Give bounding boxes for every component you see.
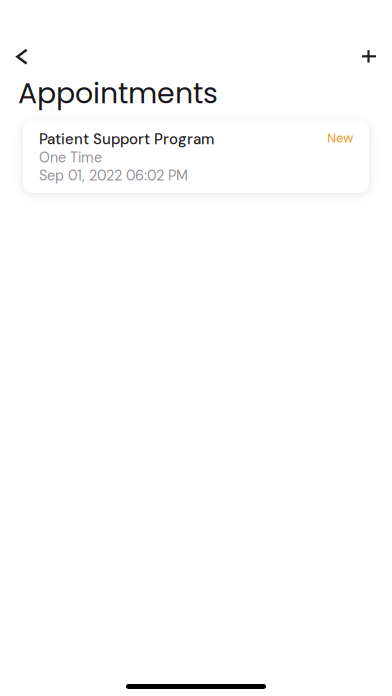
staticText: One Time — [39, 148, 102, 167]
button[interactable]: Back — [1, 36, 41, 76]
staticText: New — [327, 130, 353, 146]
button[interactable]: Add — [348, 36, 388, 76]
button[interactable]: Patient Support Program — [23, 121, 369, 193]
staticText: Appointments — [18, 73, 218, 113]
staticText: Patient Support Program — [39, 130, 214, 149]
staticText: Sep 01, 2022 06:02 PM — [39, 166, 188, 185]
